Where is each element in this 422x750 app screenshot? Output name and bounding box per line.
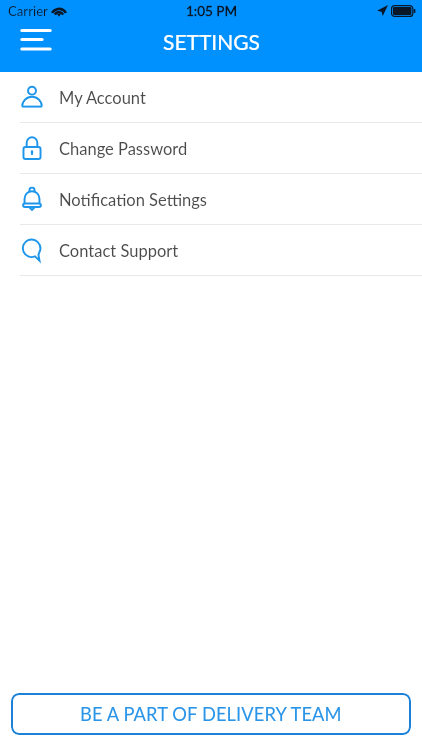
staticText: Notification Settings xyxy=(59,190,207,210)
staticText: BE A PART OF DELIVERY TEAM xyxy=(80,703,342,725)
staticText: SETTINGS xyxy=(163,29,260,54)
staticText: Change Password xyxy=(59,139,188,159)
button[interactable]: Change Password xyxy=(0,123,422,174)
staticText: 1:05 PM xyxy=(186,3,237,19)
staticText: Contact Support xyxy=(59,241,179,261)
button[interactable]: Contact Support xyxy=(0,225,422,276)
button[interactable]: Notification Settings xyxy=(0,174,422,225)
staticText: My Account xyxy=(59,88,146,108)
button[interactable]: Menu xyxy=(14,22,58,60)
button[interactable]: My Account xyxy=(0,72,422,123)
staticText: Carrier xyxy=(8,3,48,19)
button[interactable]: BE A PART OF DELIVERY TEAM xyxy=(11,693,411,735)
